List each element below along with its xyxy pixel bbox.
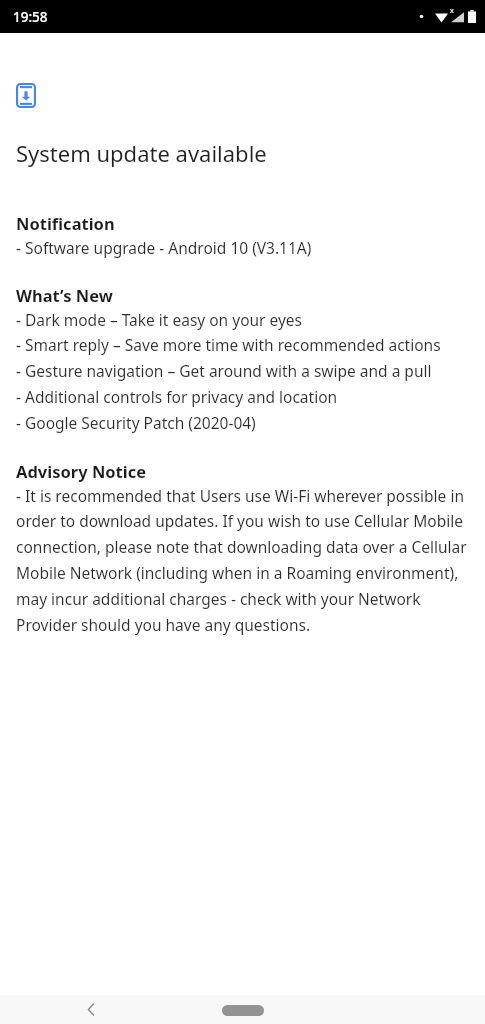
staticText: - Dark mode – Take it easy on your eyes … (16, 309, 441, 434)
staticText: - It is recommended that Users use Wi-Fi… (16, 485, 469, 636)
staticText: x (450, 6, 454, 16)
staticText: Advisory Notice (16, 460, 147, 482)
other: System update (16, 83, 36, 108)
button[interactable]: Home (216, 999, 270, 1021)
staticText: 19:58 (13, 8, 48, 26)
staticText: What’s New (16, 284, 113, 306)
staticText: Notification (16, 212, 115, 234)
staticText: System update available (16, 138, 267, 168)
staticText: - Software upgrade - Android 10 (V3.11A) (16, 237, 312, 258)
button[interactable]: Back (76, 995, 106, 1024)
